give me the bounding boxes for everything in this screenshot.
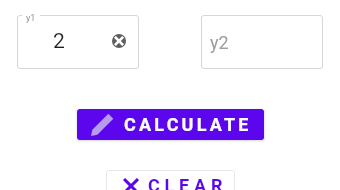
staticText: 2 <box>53 29 65 54</box>
button[interactable]: CALCULATE <box>77 109 264 140</box>
staticText: CLEAR <box>148 175 228 190</box>
button[interactable]: y1 <box>17 15 139 69</box>
button[interactable]: CLEAR <box>106 170 235 190</box>
staticText: CALCULATE <box>124 114 252 135</box>
button[interactable]: Clear <box>109 31 129 51</box>
button[interactable]: y2 <box>201 15 323 69</box>
staticText: y2 <box>210 32 229 53</box>
staticText: y1 <box>26 13 36 24</box>
